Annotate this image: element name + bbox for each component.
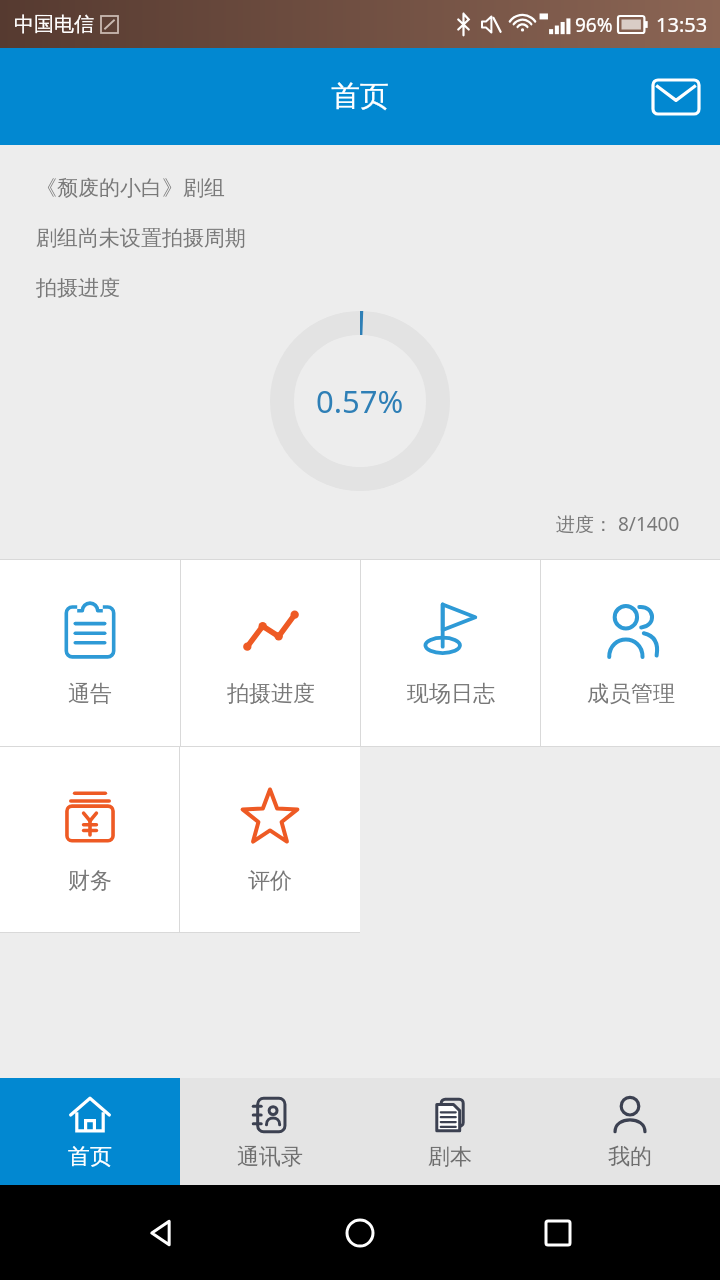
staticText: 进度： 8/1400 (556, 511, 680, 537)
staticText: 96% (575, 12, 613, 38)
staticText: 剧组尚未设置拍摄周期 (36, 225, 246, 251)
staticText: 0.57% (316, 380, 404, 422)
staticText: 拍摄进度 (36, 275, 120, 301)
staticText: 评价 (248, 867, 292, 895)
button[interactable]: Recents (523, 1198, 593, 1268)
button[interactable]: 我的 (540, 1078, 720, 1185)
staticText: 中国电信 (14, 12, 94, 37)
staticText: 通告 (68, 680, 112, 708)
button[interactable]: Home (325, 1198, 395, 1268)
staticText: 《颓废的小白》剧组 (36, 175, 225, 201)
staticText: 剧本 (428, 1143, 472, 1171)
staticText: 13:53 (656, 11, 708, 38)
button[interactable]: 首页 (0, 1078, 180, 1185)
staticText: 成员管理 (587, 680, 675, 708)
button[interactable]: 成员管理 (541, 560, 720, 746)
button[interactable]: 财务 (0, 747, 179, 932)
staticText: 通讯录 (237, 1143, 303, 1171)
button[interactable]: 拍摄进度 (181, 560, 360, 746)
button[interactable]: Back (128, 1198, 198, 1268)
staticText: 拍摄进度 (227, 680, 315, 708)
staticText: 首页 (68, 1143, 112, 1171)
button[interactable]: 通讯录 (180, 1078, 360, 1185)
button[interactable]: 评价 (180, 747, 360, 932)
button[interactable]: 现场日志 (361, 560, 540, 746)
button[interactable]: 剧本 (360, 1078, 540, 1185)
staticText: 财务 (68, 867, 112, 895)
button[interactable]: 通告 (0, 560, 180, 746)
button[interactable]: Messages (644, 65, 708, 129)
staticText: 我的 (608, 1143, 652, 1171)
staticText: 现场日志 (407, 680, 495, 708)
staticText: 首页 (331, 78, 389, 115)
